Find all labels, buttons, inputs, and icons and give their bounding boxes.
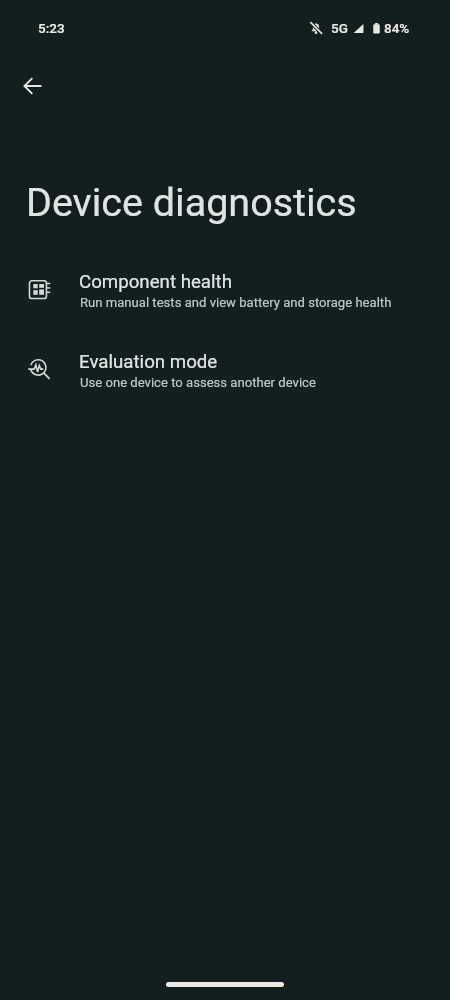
- staticText: 84%: [384, 20, 410, 36]
- staticText: 5:23: [38, 20, 65, 36]
- staticText: Evaluation mode: [79, 351, 218, 373]
- staticText: 5G: [331, 20, 348, 36]
- staticText: Use one device to assess another device: [80, 375, 316, 390]
- button[interactable]: Component health: [0, 249, 450, 329]
- button[interactable]: Back: [9, 62, 57, 110]
- staticText: Device diagnostics: [26, 179, 357, 225]
- staticText: Component health: [79, 271, 232, 293]
- staticText: Run manual tests and view battery and st…: [80, 295, 392, 310]
- button[interactable]: Evaluation mode: [0, 329, 450, 409]
